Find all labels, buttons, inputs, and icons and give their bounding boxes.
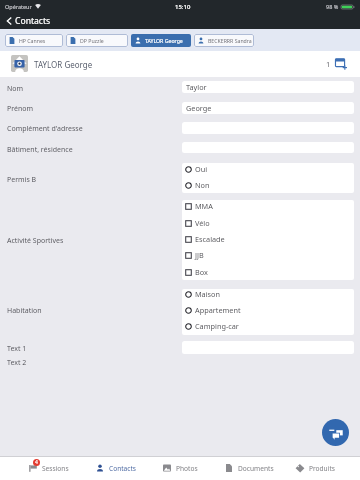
staticText: Box xyxy=(195,267,208,277)
staticText: Opérateur xyxy=(5,3,32,10)
button[interactable]: Taylor xyxy=(182,81,354,93)
staticText: Camping-car xyxy=(195,321,239,331)
staticText: Non xyxy=(195,180,210,190)
staticText: Text 2 xyxy=(7,358,27,368)
staticText: HP Cannes xyxy=(19,37,46,44)
staticText: Sessions xyxy=(42,464,69,473)
button[interactable]: Add card xyxy=(333,56,348,71)
staticText: DP Puzzle xyxy=(80,37,104,44)
staticText: Produits xyxy=(309,464,335,473)
staticText: Documents xyxy=(238,464,274,473)
button[interactable]: George xyxy=(182,102,354,114)
button[interactable]: Oui xyxy=(182,163,354,177)
button[interactable]: MMA xyxy=(182,200,354,214)
staticText: 15:10 xyxy=(175,3,191,11)
staticText: Text 1 xyxy=(7,344,27,354)
button[interactable]: Photos xyxy=(162,456,198,480)
staticText: 4 xyxy=(35,459,38,466)
staticText: Taylor xyxy=(186,82,207,92)
button[interactable]: DP Puzzle xyxy=(66,34,128,47)
staticText: Prénom xyxy=(7,104,34,114)
button[interactable]: Escalade xyxy=(182,231,354,247)
staticText: Complément d'adresse xyxy=(7,124,83,134)
staticText: Photos xyxy=(176,464,198,473)
staticText: Bâtiment, résidence xyxy=(7,145,73,155)
button[interactable]: Camping-car xyxy=(182,318,354,334)
button[interactable]: HP Cannes xyxy=(5,34,63,47)
staticText: TAYLOR George xyxy=(145,37,183,44)
staticText: Appartement xyxy=(195,305,241,315)
button[interactable]: Contacts xyxy=(95,456,137,480)
staticText: TAYLOR George xyxy=(34,59,93,70)
button[interactable]: Non xyxy=(182,177,354,193)
staticText: Escalade xyxy=(195,234,225,244)
button[interactable]: Produits xyxy=(295,456,335,480)
staticText: JJB xyxy=(195,250,204,260)
button[interactable]: Documents xyxy=(224,456,274,480)
staticText: BECKERRR Sandra xyxy=(208,37,252,44)
button[interactable]: Maison xyxy=(182,289,354,302)
button[interactable]: 4 xyxy=(28,456,69,480)
button[interactable]: TAYLOR George xyxy=(131,34,191,47)
staticText: Contacts xyxy=(15,15,51,27)
staticText: 1 xyxy=(326,59,331,69)
staticText: Contacts xyxy=(109,464,137,473)
button[interactable]: JJB xyxy=(182,247,354,263)
staticText: Activité Sportives xyxy=(7,236,64,246)
button[interactable]: Contacts xyxy=(4,14,53,28)
staticText: Vélo xyxy=(195,218,210,228)
staticText: MMA xyxy=(195,201,213,211)
staticText: Oui xyxy=(195,164,208,174)
button[interactable]: Box xyxy=(182,264,354,280)
staticText: Permis B xyxy=(7,175,37,185)
button[interactable]: BECKERRR Sandra xyxy=(194,34,254,47)
staticText: Maison xyxy=(195,289,221,299)
staticText: Habitation xyxy=(7,306,42,316)
staticText: George xyxy=(186,103,212,113)
staticText: 98 % xyxy=(326,3,339,10)
button[interactable]: Vélo xyxy=(182,215,354,231)
staticText: Nom xyxy=(7,84,24,94)
button[interactable]: Messages xyxy=(322,419,349,446)
button[interactable]: Appartement xyxy=(182,302,354,318)
